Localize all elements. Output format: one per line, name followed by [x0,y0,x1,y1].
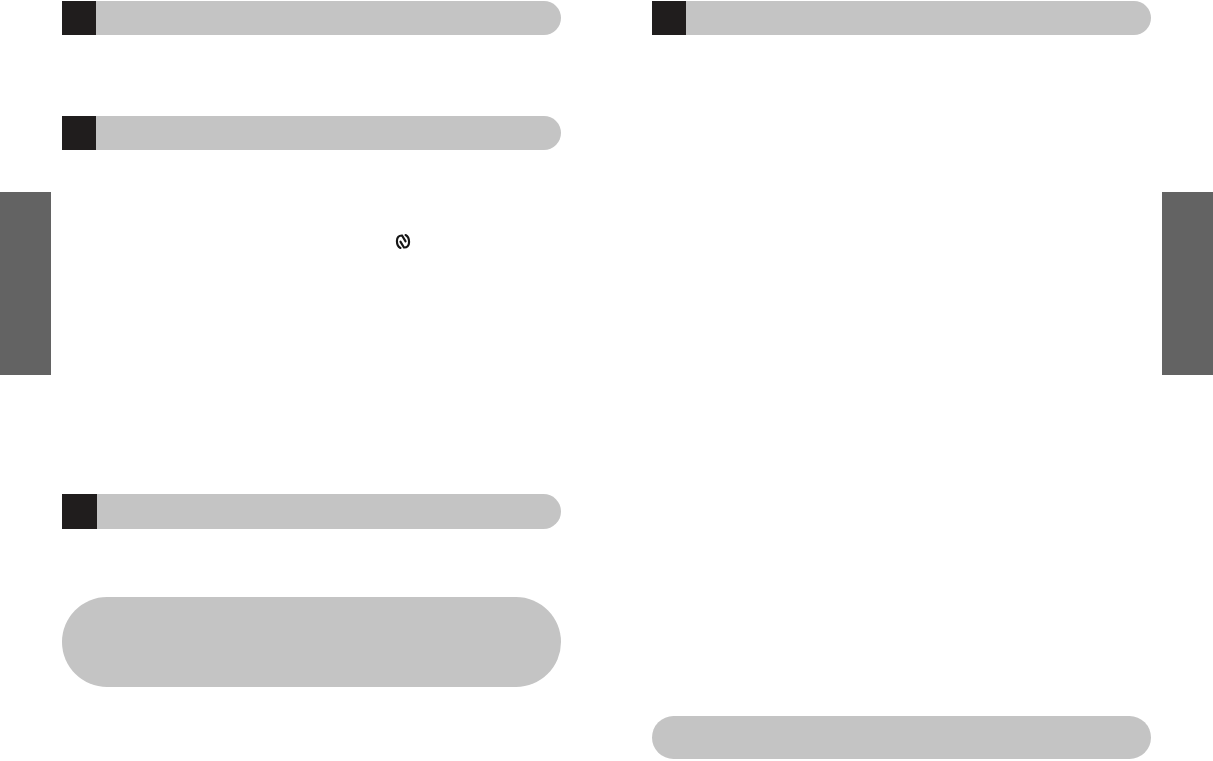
button[interactable]: Item three [62,116,561,150]
button[interactable]: Item four [62,494,561,529]
button[interactable]: Item two [652,1,1151,35]
button[interactable]: Item one [62,1,561,35]
button[interactable]: NFC [395,234,411,249]
button[interactable]: Bottom item [652,716,1151,759]
button[interactable]: Detail card [62,597,561,687]
